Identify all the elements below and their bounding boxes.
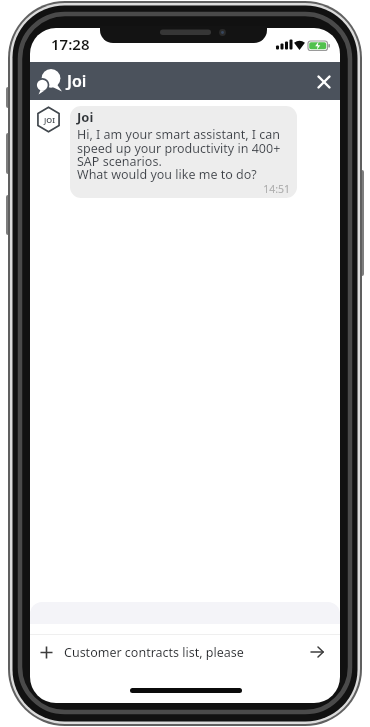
staticText: Customer contracts list, please [64,644,244,661]
staticText: 14:51 [77,182,290,196]
button[interactable] [307,65,340,98]
staticText: Joi [77,108,94,126]
button[interactable]: Customer contracts list, please [30,635,340,669]
staticText: 17:28 [51,34,90,54]
staticText: Joi [67,70,87,92]
staticText: Hi, I am your smart assistant, I can spe… [77,126,281,182]
staticText: JOI [44,115,55,125]
